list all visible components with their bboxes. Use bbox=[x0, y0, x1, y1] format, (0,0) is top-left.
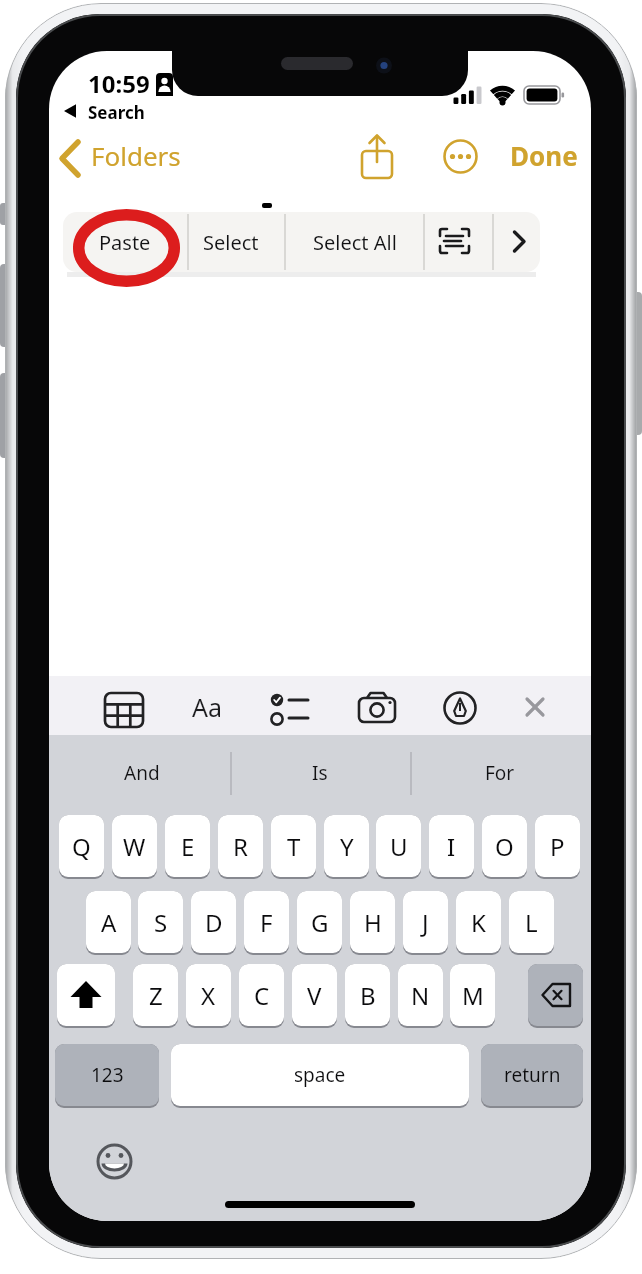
button[interactable]: E bbox=[165, 815, 210, 879]
button[interactable]: 123 bbox=[55, 1044, 159, 1108]
button[interactable]: R bbox=[218, 815, 263, 879]
staticText: Select bbox=[203, 229, 259, 256]
button[interactable] bbox=[511, 687, 559, 731]
staticText: O bbox=[495, 830, 514, 863]
button[interactable]: S bbox=[138, 891, 183, 955]
button[interactable]: Y bbox=[324, 815, 369, 879]
staticText: G bbox=[311, 906, 329, 939]
staticText: R bbox=[233, 830, 248, 863]
staticText: Is bbox=[312, 760, 328, 786]
staticText: Y bbox=[340, 830, 354, 863]
button[interactable]: F bbox=[244, 891, 289, 955]
staticText: N bbox=[411, 979, 430, 1012]
staticText: H bbox=[364, 906, 382, 939]
staticText: L bbox=[525, 906, 538, 939]
button[interactable]: Select All bbox=[297, 219, 413, 265]
staticText: W bbox=[123, 830, 146, 863]
staticText: 123 bbox=[91, 1062, 124, 1088]
staticText: A bbox=[101, 906, 117, 939]
button[interactable] bbox=[57, 964, 115, 1028]
staticText: Q bbox=[72, 830, 91, 863]
button[interactable]: space bbox=[171, 1044, 469, 1108]
staticText: K bbox=[471, 906, 486, 939]
button[interactable]: V bbox=[292, 964, 337, 1028]
button[interactable] bbox=[435, 687, 485, 733]
button[interactable] bbox=[265, 687, 315, 733]
staticText: X bbox=[201, 979, 216, 1012]
button[interactable]: M bbox=[450, 964, 495, 1028]
staticText: And bbox=[124, 760, 160, 786]
button[interactable]: G bbox=[297, 891, 342, 955]
staticText: U bbox=[390, 830, 408, 863]
button[interactable]: Aa bbox=[185, 690, 229, 724]
button[interactable]: For bbox=[460, 754, 540, 792]
button[interactable]: Folders bbox=[91, 138, 231, 173]
staticText: Aa bbox=[192, 690, 223, 724]
staticText: Done bbox=[510, 138, 578, 173]
button[interactable]: D bbox=[191, 891, 236, 955]
button[interactable] bbox=[497, 219, 540, 265]
staticText: Paste bbox=[99, 229, 151, 256]
button[interactable] bbox=[439, 133, 483, 181]
button[interactable]: L bbox=[509, 891, 554, 955]
button[interactable] bbox=[353, 131, 401, 183]
staticText: P bbox=[550, 830, 565, 863]
button[interactable] bbox=[55, 135, 85, 181]
button[interactable]: I bbox=[429, 815, 474, 879]
button[interactable] bbox=[528, 964, 583, 1028]
button[interactable]: Paste bbox=[80, 219, 170, 265]
staticText: Folders bbox=[91, 138, 181, 173]
staticText: C bbox=[254, 979, 270, 1012]
staticText: V bbox=[307, 979, 322, 1012]
button[interactable] bbox=[352, 687, 402, 733]
staticText: 10:59 bbox=[88, 67, 150, 96]
staticText: F bbox=[260, 906, 273, 939]
button[interactable]: And bbox=[102, 754, 182, 792]
button[interactable]: Select bbox=[186, 219, 276, 265]
staticText: T bbox=[287, 830, 301, 863]
staticText: J bbox=[422, 906, 429, 939]
button[interactable]: B bbox=[345, 964, 390, 1028]
button[interactable]: Z bbox=[133, 964, 178, 1028]
staticText: Select All bbox=[313, 229, 397, 256]
button[interactable]: H bbox=[350, 891, 395, 955]
button[interactable]: X bbox=[186, 964, 231, 1028]
button[interactable] bbox=[429, 219, 479, 265]
button[interactable]: C bbox=[239, 964, 284, 1028]
staticText: I bbox=[447, 830, 456, 863]
button[interactable]: N bbox=[398, 964, 443, 1028]
button[interactable]: Done bbox=[501, 138, 586, 173]
staticText: S bbox=[154, 906, 168, 939]
button[interactable]: Q bbox=[59, 815, 104, 879]
staticText: D bbox=[205, 906, 223, 939]
button[interactable] bbox=[97, 1144, 133, 1180]
button[interactable]: return bbox=[481, 1044, 583, 1108]
staticText: Z bbox=[149, 979, 163, 1012]
staticText: E bbox=[181, 830, 195, 863]
button[interactable]: T bbox=[271, 815, 316, 879]
button[interactable]: P bbox=[535, 815, 580, 879]
staticText: Search bbox=[88, 101, 145, 123]
button[interactable]: A bbox=[86, 891, 131, 955]
button[interactable]: K bbox=[456, 891, 501, 955]
staticText: space bbox=[294, 1062, 346, 1088]
staticText: return bbox=[504, 1062, 561, 1088]
staticText: For bbox=[485, 760, 515, 786]
button[interactable]: Is bbox=[280, 754, 360, 792]
button[interactable]: W bbox=[112, 815, 157, 879]
staticText: B bbox=[360, 979, 376, 1012]
button[interactable]: J bbox=[403, 891, 448, 955]
staticText: M bbox=[462, 979, 484, 1012]
button[interactable]: U bbox=[376, 815, 421, 879]
button[interactable] bbox=[99, 687, 149, 733]
button[interactable]: O bbox=[482, 815, 527, 879]
